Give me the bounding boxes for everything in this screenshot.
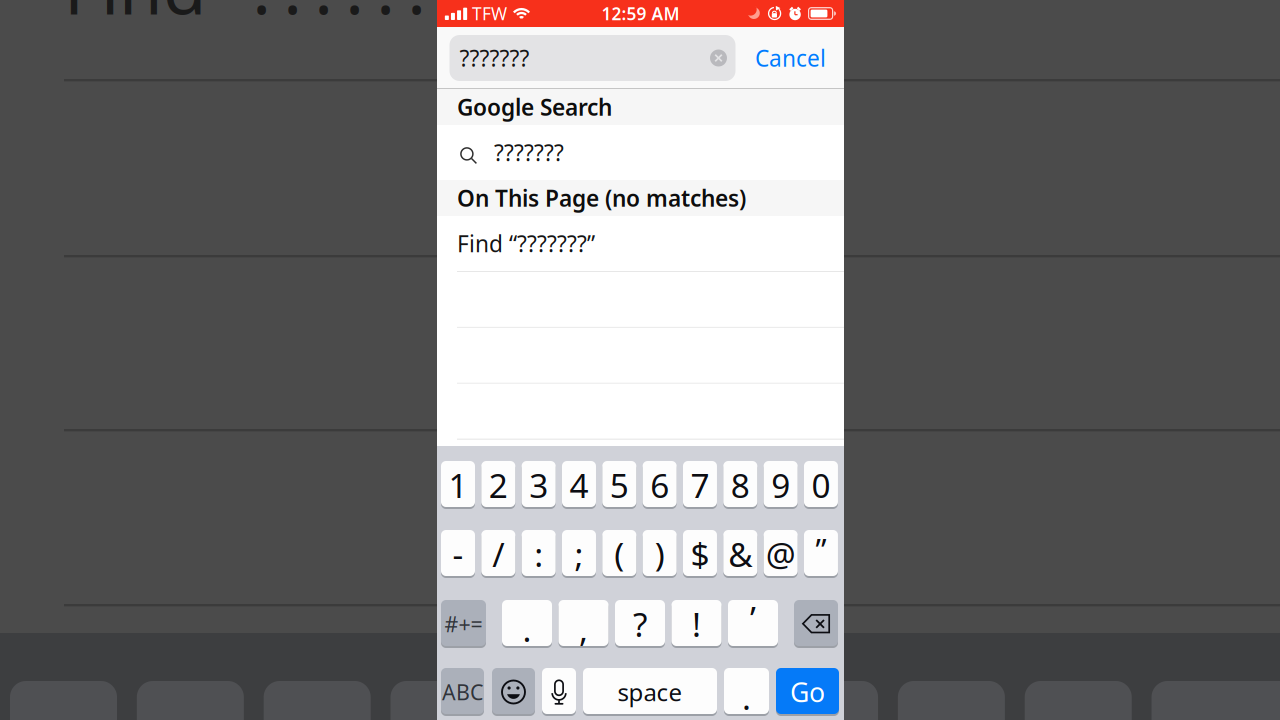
button[interactable]: #+=	[441, 600, 486, 648]
button[interactable]: ???????	[437, 125, 844, 180]
staticText: ?	[633, 602, 647, 646]
staticText: !	[692, 602, 701, 646]
button[interactable]: ;	[562, 530, 596, 578]
button[interactable]: 2	[481, 461, 515, 509]
staticText: &	[728, 532, 752, 576]
button[interactable]: -	[441, 530, 475, 578]
staticText: ???????	[459, 43, 529, 73]
button[interactable]: :	[522, 530, 556, 578]
staticText: ,	[579, 607, 588, 651]
staticText: 8	[731, 463, 750, 507]
staticText: ???????	[494, 137, 564, 167]
button[interactable]: /	[481, 530, 515, 578]
button[interactable]: Find “???????”	[437, 216, 844, 271]
staticText: 12:59 AM	[601, 2, 679, 25]
staticText: .	[742, 675, 751, 719]
staticText: (	[614, 532, 624, 576]
staticText: $	[690, 532, 709, 576]
button[interactable]: !	[671, 600, 721, 648]
button[interactable]: 7	[683, 461, 717, 509]
staticText: -	[452, 532, 463, 576]
staticText: :	[534, 532, 543, 576]
button[interactable]: .	[502, 600, 552, 648]
button[interactable]: ,	[558, 600, 608, 648]
staticText: @	[766, 532, 796, 576]
staticText: ;	[574, 532, 583, 576]
button[interactable]: 1	[441, 461, 475, 509]
button[interactable]: $	[683, 530, 717, 578]
button[interactable]: Dictation	[542, 668, 576, 716]
button[interactable]: &	[723, 530, 757, 578]
staticText: 1	[448, 463, 467, 507]
staticText: #+=	[444, 610, 482, 638]
button[interactable]: )	[643, 530, 677, 578]
staticText: 7	[690, 463, 709, 507]
button[interactable]: 3	[522, 461, 556, 509]
button[interactable]: Delete	[794, 600, 838, 648]
staticText: Find “???????”	[457, 228, 595, 258]
button[interactable]: Clear text	[703, 38, 733, 78]
button[interactable]: 6	[643, 461, 677, 509]
button[interactable]: 8	[723, 461, 757, 509]
staticText: 5	[610, 463, 629, 507]
staticText: Google Search	[457, 92, 612, 122]
staticText: 3	[529, 463, 548, 507]
button[interactable]: ’	[728, 600, 778, 648]
button[interactable]: (	[602, 530, 636, 578]
staticText: /	[492, 532, 504, 576]
staticText: 0	[811, 463, 830, 507]
button[interactable]: ”	[804, 530, 838, 578]
staticText: Go	[790, 674, 825, 710]
button[interactable]: 5	[602, 461, 636, 509]
button[interactable]: Emoji	[492, 668, 535, 716]
button[interactable]: ?	[615, 600, 665, 648]
button[interactable]: @	[764, 530, 798, 578]
staticText: ’	[750, 596, 756, 640]
button[interactable]: ABC	[441, 668, 484, 716]
staticText: Find “???????”	[64, 0, 491, 34]
button[interactable]: Cancel	[746, 32, 834, 84]
staticText: space	[617, 676, 682, 708]
staticText: TFW	[472, 2, 507, 25]
staticText: 6	[650, 463, 669, 507]
button[interactable]: 4	[562, 461, 596, 509]
staticText: Cancel	[755, 43, 826, 73]
staticText: )	[655, 532, 665, 576]
button[interactable]: 9	[764, 461, 798, 509]
staticText: 2	[489, 463, 508, 507]
staticText: On This Page (no matches)	[457, 183, 746, 213]
button[interactable]: Go	[776, 668, 839, 716]
staticText: 4	[569, 463, 588, 507]
staticText: ABC	[442, 678, 483, 706]
button[interactable]: 0	[804, 461, 838, 509]
staticText: .	[522, 607, 531, 651]
button[interactable]: .	[724, 668, 769, 716]
staticText: 9	[771, 463, 790, 507]
staticText: ”	[815, 529, 826, 569]
button[interactable]: space	[583, 668, 717, 716]
